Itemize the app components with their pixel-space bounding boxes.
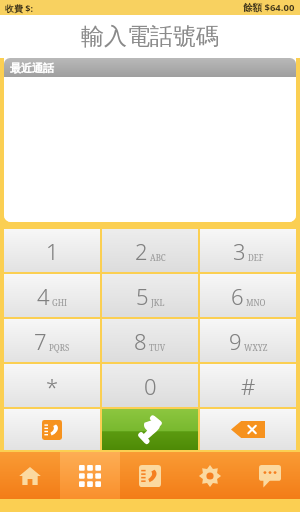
staticText: WXYZ: [244, 342, 268, 353]
button[interactable]: Contacts: [120, 452, 180, 499]
button[interactable]: 1: [4, 229, 100, 272]
staticText: 1: [46, 236, 59, 266]
staticText: TUV: [149, 342, 166, 353]
staticText: DEF: [248, 252, 264, 263]
button[interactable]: Home: [0, 452, 60, 499]
button[interactable]: *: [4, 364, 100, 407]
staticText: GHI: [52, 297, 67, 308]
button[interactable]: Settings: [180, 452, 240, 499]
staticText: 7: [34, 326, 47, 356]
staticText: 5: [136, 281, 149, 311]
button[interactable]: #: [200, 364, 296, 407]
staticText: *: [46, 371, 59, 401]
staticText: ABC: [150, 252, 166, 263]
staticText: 8: [134, 326, 147, 356]
button[interactable]: Messages: [240, 452, 300, 499]
staticText: 輸入電話號碼: [81, 22, 219, 51]
staticText: 3: [233, 236, 246, 266]
button[interactable]: 8: [102, 319, 198, 362]
staticText: 2: [135, 236, 148, 266]
button[interactable]: 7: [4, 319, 100, 362]
staticText: #: [241, 371, 256, 401]
button[interactable]: 6: [200, 274, 296, 317]
staticText: 4: [37, 281, 50, 311]
button[interactable]: 2: [102, 229, 198, 272]
staticText: 最近通話: [10, 61, 54, 75]
staticText: 9: [229, 326, 242, 356]
staticText: 餘額 $64.00: [243, 1, 295, 14]
button[interactable]: 5: [102, 274, 198, 317]
button[interactable]: 4: [4, 274, 100, 317]
button[interactable]: Contacts: [4, 409, 100, 450]
button[interactable]: Call: [102, 409, 198, 450]
staticText: 0: [144, 371, 157, 401]
button[interactable]: 3: [200, 229, 296, 272]
staticText: PQRS: [49, 342, 70, 353]
staticText: MNO: [246, 297, 266, 308]
button[interactable]: 9: [200, 319, 296, 362]
staticText: JKL: [151, 297, 165, 308]
button[interactable]: Delete: [200, 409, 296, 450]
staticText: 6: [231, 281, 244, 311]
button[interactable]: 0: [102, 364, 198, 407]
button[interactable]: 最近通話: [4, 58, 296, 77]
staticText: 收費 $:: [5, 2, 34, 14]
button[interactable]: Dialer: [60, 452, 120, 499]
button[interactable]: [4, 77, 296, 222]
